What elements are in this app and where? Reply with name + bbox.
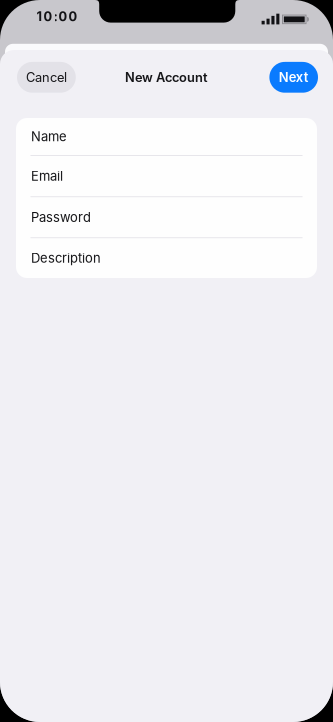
staticText: Cancel <box>26 70 67 85</box>
button[interactable]: Name <box>16 118 317 155</box>
button[interactable]: Password <box>16 197 317 237</box>
staticText: : <box>53 9 57 24</box>
staticText: Next <box>279 69 309 85</box>
staticText: Password <box>31 209 91 225</box>
button[interactable]: Email <box>16 156 317 196</box>
staticText: 0 <box>68 9 77 24</box>
staticText: 0 <box>58 9 67 24</box>
staticText: Email <box>31 168 63 184</box>
button[interactable]: Description <box>16 238 317 278</box>
staticText: 0 <box>43 9 52 24</box>
staticText: Description <box>31 250 101 266</box>
staticText: Name <box>31 129 67 144</box>
button[interactable]: Cancel <box>17 62 76 93</box>
staticText: 1 <box>36 9 42 24</box>
staticText: New Account <box>125 70 208 85</box>
button[interactable]: Next <box>269 62 318 93</box>
